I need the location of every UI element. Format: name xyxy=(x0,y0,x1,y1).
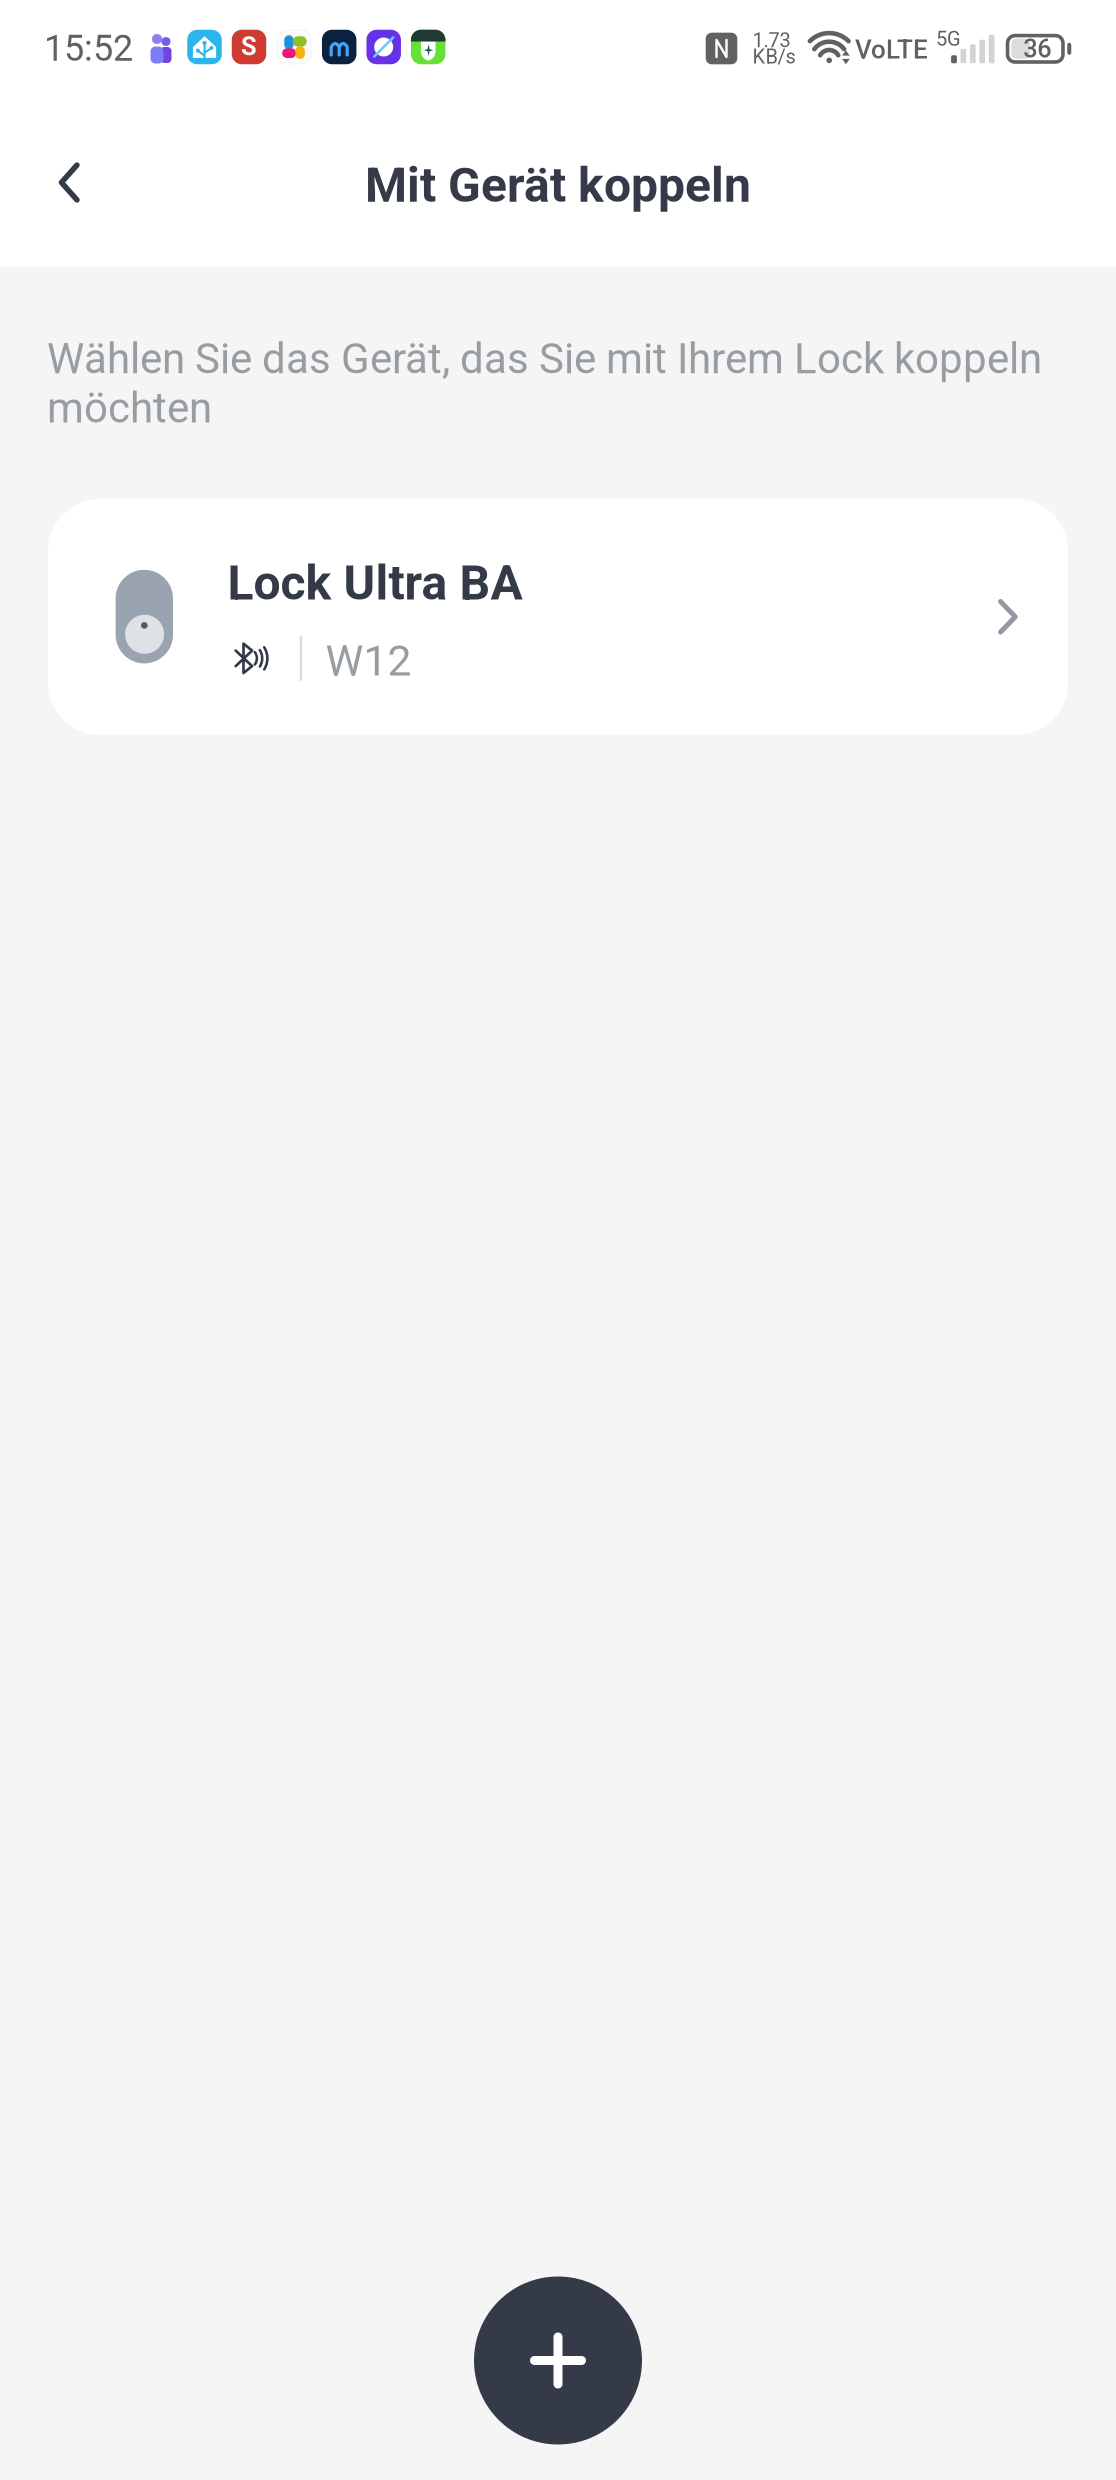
staticText: W12 xyxy=(325,636,411,686)
staticText: 5G xyxy=(936,27,961,50)
staticText: KB/s xyxy=(752,45,795,68)
staticText: 1.73 xyxy=(752,29,790,52)
button[interactable]: Zurück xyxy=(21,134,117,230)
staticText: VoLTE xyxy=(855,34,928,65)
staticText: Lock Ultra BA xyxy=(227,555,522,611)
button[interactable]: Gerät hinzufügen xyxy=(474,2276,642,2444)
staticText: S xyxy=(241,32,257,61)
staticText: Mit Gerät koppeln xyxy=(365,157,751,213)
button[interactable]: Lock Ultra BA xyxy=(48,499,1068,735)
staticText: 36 xyxy=(1023,34,1051,64)
staticText: 15:52 xyxy=(44,27,133,70)
staticText: Wählen Sie das Gerät, das Sie mit Ihrem … xyxy=(47,334,1042,433)
